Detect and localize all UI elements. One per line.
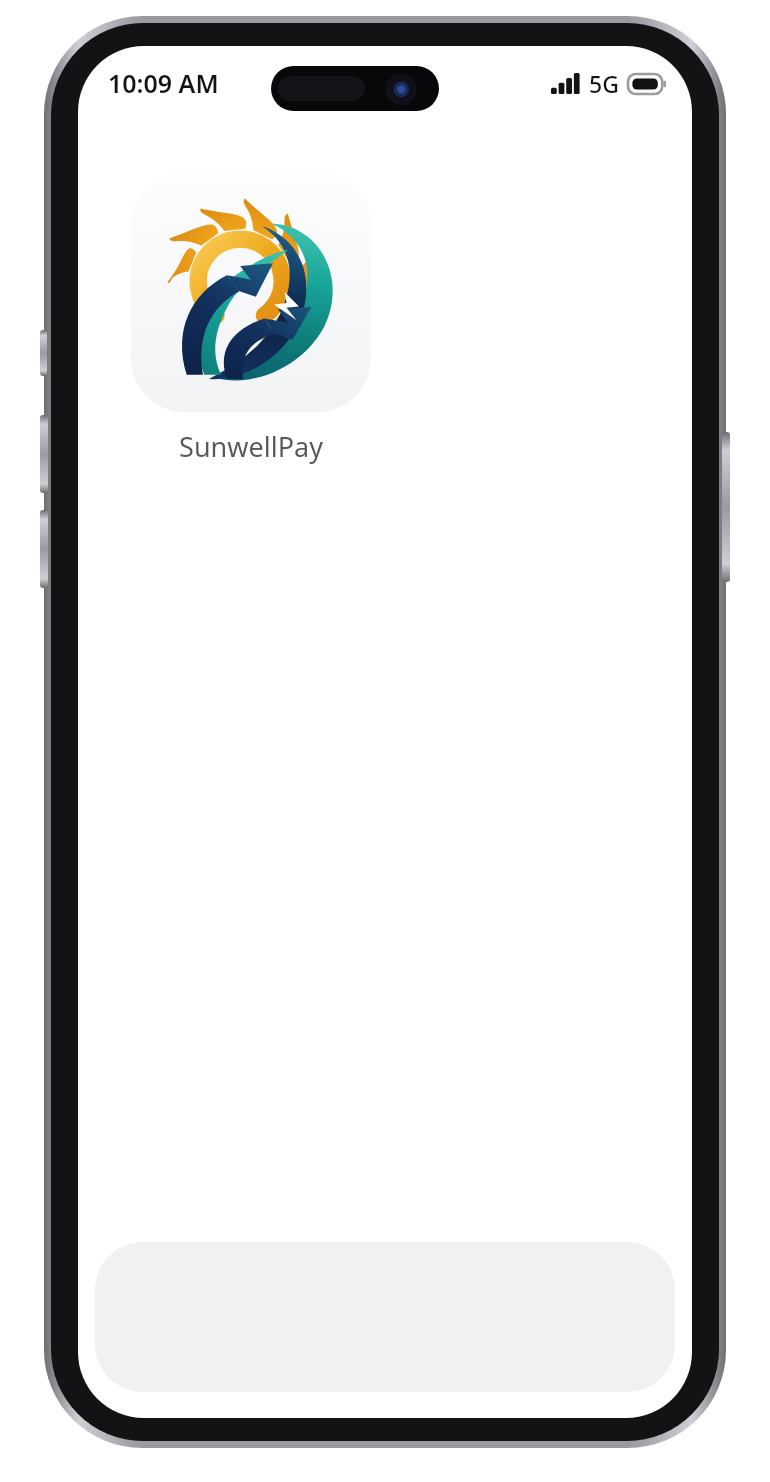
staticText: SunwellPay <box>179 428 323 465</box>
staticText: 5G <box>589 68 619 99</box>
staticText: 10:09 AM <box>108 66 219 100</box>
button[interactable]: SunwellPay <box>120 172 382 465</box>
